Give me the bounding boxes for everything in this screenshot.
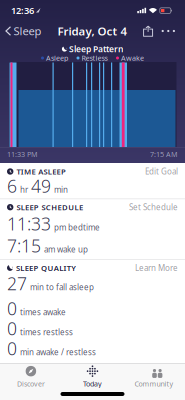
staticText: pm bedtime <box>54 221 100 234</box>
staticText: am wake up <box>44 243 88 256</box>
button[interactable]: Set Schedule <box>129 201 185 213</box>
staticText: 0 <box>7 335 17 362</box>
staticText: Sleep Pattern <box>69 42 123 56</box>
staticText: 12:36 <box>11 3 34 18</box>
staticText: SLEEP QUALITY <box>16 262 76 274</box>
staticText: times awake <box>20 306 66 318</box>
staticText: 0 <box>7 315 17 342</box>
staticText: 11:33 <box>7 210 51 237</box>
staticText: min <box>54 183 68 196</box>
staticText: 7:15 <box>7 232 41 259</box>
button[interactable]: Learn More <box>135 262 185 274</box>
staticText: 7:15 AM <box>150 149 178 160</box>
button[interactable]: Edit Goal <box>145 165 185 178</box>
staticText: Restless <box>81 52 107 64</box>
staticText: Discover <box>17 378 45 389</box>
staticText: 49 <box>31 172 51 200</box>
staticText: TIME ASLEEP <box>16 165 66 177</box>
staticText: Awake <box>121 52 144 64</box>
staticText: min awake / restless <box>20 346 96 358</box>
button[interactable]: Discover <box>0 367 62 389</box>
staticText: 27 <box>7 270 27 297</box>
staticText: SLEEP SCHEDULE <box>16 201 83 213</box>
button[interactable]: Community <box>123 367 185 389</box>
button[interactable]: Sleep <box>0 22 41 40</box>
staticText: 0 <box>7 295 17 322</box>
staticText: Asleep <box>46 52 68 64</box>
staticText: Set Schedule <box>129 201 178 213</box>
staticText: Today <box>83 378 102 389</box>
staticText: Community <box>135 378 174 389</box>
staticText: min to fall asleep <box>30 281 94 293</box>
staticText: Edit Goal <box>145 165 178 178</box>
staticText: 6 <box>7 172 17 200</box>
staticText: hr <box>20 183 28 196</box>
staticText: Friday, Oct 4 <box>57 22 127 40</box>
button[interactable]: More <box>159 26 178 36</box>
staticText: 11:33 PM <box>7 149 38 160</box>
staticText: Sleep <box>13 22 41 40</box>
staticText: Learn More <box>135 262 178 274</box>
button[interactable]: Today <box>62 367 123 389</box>
button[interactable]: Share <box>141 23 156 39</box>
staticText: times restless <box>20 326 73 338</box>
